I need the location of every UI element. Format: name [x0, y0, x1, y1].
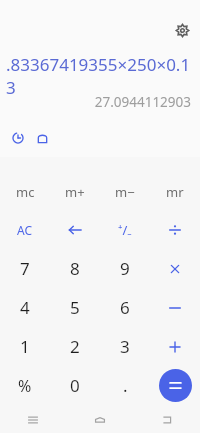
- button[interactable]: Divide: [150, 211, 200, 249]
- button[interactable]: 6: [100, 288, 150, 327]
- button[interactable]: 3: [100, 327, 150, 366]
- button[interactable]: 9: [100, 249, 150, 288]
- staticText: m+: [65, 183, 85, 201]
- button[interactable]: Settings: [171, 19, 193, 41]
- button[interactable]: History: [8, 128, 28, 148]
- button[interactable]: 5: [50, 288, 100, 327]
- staticText: %: [18, 375, 32, 397]
- button[interactable]: 8: [50, 249, 100, 288]
- staticText: 4: [20, 296, 30, 319]
- button[interactable]: m+: [50, 173, 100, 211]
- staticText: 5: [70, 296, 80, 319]
- button[interactable]: Equals: [159, 369, 192, 402]
- staticText: ⁺/₋: [118, 221, 132, 239]
- button[interactable]: 1: [0, 327, 50, 366]
- button[interactable]: %: [0, 366, 50, 405]
- staticText: 7: [20, 257, 30, 280]
- button[interactable]: m−: [100, 173, 150, 211]
- staticText: .: [123, 374, 128, 397]
- staticText: AC: [17, 222, 33, 238]
- staticText: .83367419355×250×0.13: [6, 53, 194, 99]
- staticText: 0: [70, 374, 80, 397]
- button[interactable]: Multiply: [150, 249, 200, 288]
- staticText: 9: [120, 257, 130, 280]
- staticText: 27.0944112903: [0, 93, 191, 111]
- staticText: 3: [120, 335, 130, 358]
- staticText: 1: [20, 335, 30, 358]
- button[interactable]: 0: [50, 366, 100, 405]
- staticText: mr: [166, 183, 184, 201]
- button[interactable]: Back: [133, 407, 200, 433]
- staticText: 6: [120, 296, 130, 319]
- button[interactable]: Minus: [150, 288, 200, 327]
- staticText: m−: [115, 183, 135, 201]
- button[interactable]: Recents: [0, 407, 66, 433]
- staticText: mc: [16, 183, 35, 201]
- button[interactable]: AC: [0, 211, 50, 249]
- button[interactable]: Unit converter: [32, 128, 52, 148]
- button[interactable]: Home: [66, 407, 133, 433]
- button[interactable]: mr: [150, 173, 200, 211]
- button[interactable]: .: [100, 366, 150, 405]
- button[interactable]: 4: [0, 288, 50, 327]
- button[interactable]: Backspace: [50, 211, 100, 249]
- staticText: 8: [70, 257, 80, 280]
- button[interactable]: 7: [0, 249, 50, 288]
- button[interactable]: 2: [50, 327, 100, 366]
- button[interactable]: Plus: [150, 327, 200, 366]
- staticText: 2: [70, 335, 80, 358]
- button[interactable]: mc: [0, 173, 50, 211]
- button[interactable]: ⁺/₋: [100, 211, 150, 249]
